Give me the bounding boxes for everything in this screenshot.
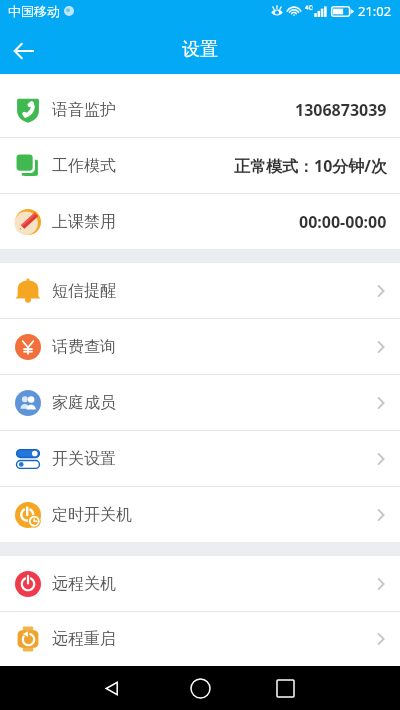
button[interactable]: 工作模式 xyxy=(0,138,400,193)
button[interactable]: 语音监护 xyxy=(0,82,400,137)
staticText: 设置 xyxy=(182,38,218,61)
staticText: 工作模式 xyxy=(52,156,116,176)
staticText: 语音监护 xyxy=(52,100,116,120)
button[interactable]: Back xyxy=(0,28,46,74)
button[interactable]: 开关设置 xyxy=(0,431,400,486)
staticText: 00:00-00:00 xyxy=(299,211,387,233)
staticText: 21:02 xyxy=(358,2,392,20)
staticText: 定时开关机 xyxy=(52,505,132,525)
button[interactable]: 上课禁用 xyxy=(0,194,400,249)
staticText: 远程关机 xyxy=(52,574,116,594)
staticText: 家庭成员 xyxy=(52,393,116,413)
staticText: 开关设置 xyxy=(52,449,116,469)
staticText: 正常模式：10分钟/次 xyxy=(234,155,387,177)
staticText: 短信提醒 xyxy=(52,281,116,301)
button[interactable]: Home xyxy=(178,666,222,710)
staticText: 中国移动 xyxy=(8,3,60,19)
button[interactable]: Back xyxy=(89,666,133,710)
staticText: 上课禁用 xyxy=(52,212,116,232)
button[interactable]: 话费查询 xyxy=(0,319,400,374)
staticText: 1306873039 xyxy=(295,99,387,121)
staticText: 话费查询 xyxy=(52,337,116,357)
button[interactable]: 定时开关机 xyxy=(0,487,400,542)
button[interactable]: Recents xyxy=(263,666,307,710)
button[interactable]: 短信提醒 xyxy=(0,263,400,318)
button[interactable]: 远程关机 xyxy=(0,556,400,611)
staticText: 远程重启 xyxy=(52,629,116,649)
button[interactable]: 家庭成员 xyxy=(0,375,400,430)
button[interactable]: 远程重启 xyxy=(0,612,400,666)
